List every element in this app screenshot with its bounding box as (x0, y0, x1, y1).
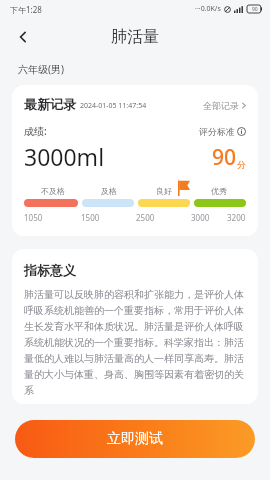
button[interactable]: 全部记录 (203, 100, 246, 112)
staticText: 3000 (191, 212, 210, 223)
staticText: 最新记录 (24, 96, 76, 112)
button[interactable]: Back (8, 22, 38, 52)
staticText: 及格 (101, 186, 117, 196)
button[interactable]: 评分标准 (199, 126, 246, 137)
staticText: 3000ml (24, 141, 105, 172)
staticText: 3200 (227, 212, 246, 223)
staticText: 评分标准 (199, 126, 235, 137)
button[interactable]: 立即测试 (15, 420, 255, 458)
staticText: 肺活量可以反映肺的容积和扩张能力，是评价人体呼吸系统机能善的一个重要指标，常用于… (24, 288, 246, 397)
staticText: 不及格 (41, 186, 65, 196)
staticText: 立即测试 (107, 430, 163, 448)
staticText: 90 (252, 6, 258, 13)
staticText: ···0.0K/s (195, 4, 221, 14)
staticText: 下午1:28 (10, 4, 42, 15)
staticText: 优秀 (211, 186, 227, 196)
staticText: 分 (237, 159, 246, 170)
staticText: 1500 (81, 212, 100, 223)
staticText: 良好 (156, 186, 172, 196)
staticText: 成绩: (24, 124, 47, 138)
staticText: 2500 (136, 212, 155, 223)
staticText: 1050 (24, 212, 43, 223)
staticText: 2024-01-05 11:47:54 (80, 101, 147, 111)
staticText: 六年级(男) (18, 62, 64, 76)
other: Scoring info (237, 127, 246, 136)
staticText: 肺活量 (111, 27, 159, 47)
staticText: 指标意义 (24, 262, 76, 278)
staticText: 全部记录 (203, 100, 239, 111)
staticText: 90 (212, 143, 237, 172)
